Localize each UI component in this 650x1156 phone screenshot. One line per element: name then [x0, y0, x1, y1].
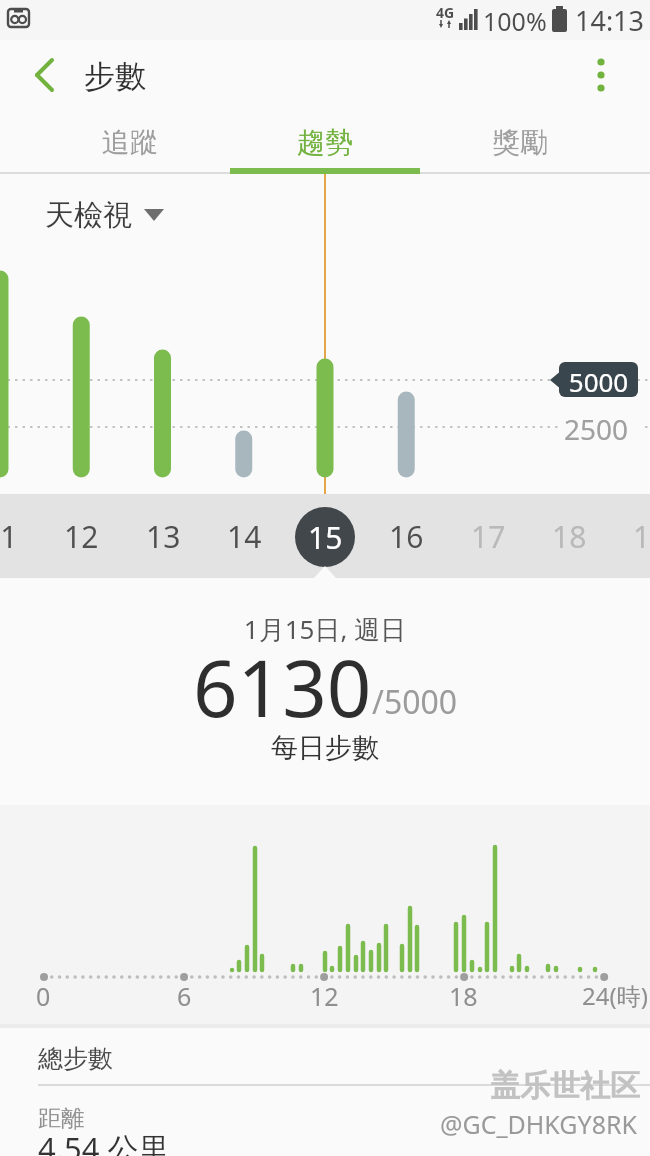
staticText: 18 — [449, 979, 478, 1013]
staticText: 14 — [227, 516, 262, 557]
staticText: 2500 — [564, 410, 629, 448]
staticText: 13 — [146, 516, 181, 557]
staticText: @GC_DHKGY8RK — [440, 1107, 638, 1141]
staticText: 24(時) — [582, 979, 648, 1012]
staticText: 6130 — [193, 634, 372, 740]
staticText: 19 — [633, 516, 650, 557]
button[interactable]: 11 — [0, 494, 40, 578]
button[interactable]: 15 — [295, 507, 355, 567]
staticText: 14:13 — [575, 2, 645, 39]
staticText: 總步數 — [38, 1043, 113, 1074]
button[interactable]: 18 — [529, 494, 609, 578]
button[interactable]: 追蹤 — [35, 110, 225, 174]
staticText: 17 — [471, 516, 506, 557]
staticText: 4.54 公里 — [38, 1127, 170, 1156]
staticText: /5000 — [372, 680, 458, 724]
staticText: 1月15日, 週日 — [0, 611, 650, 647]
button[interactable]: 17 — [448, 494, 528, 578]
staticText: 獎勵 — [492, 125, 548, 160]
button[interactable]: 12 — [41, 494, 121, 578]
staticText: 0 — [36, 979, 51, 1013]
staticText: 盖乐世社区 — [490, 1067, 640, 1105]
button[interactable]: 趨勢 — [230, 110, 420, 174]
button[interactable]: 16 — [366, 494, 446, 578]
staticText: 12 — [310, 979, 339, 1013]
staticText: 16 — [389, 516, 424, 557]
staticText: 6 — [177, 979, 192, 1013]
button[interactable]: 14 — [204, 494, 284, 578]
staticText: 18 — [552, 516, 587, 557]
staticText: 天檢視 — [45, 197, 132, 234]
staticText: 5000 — [559, 364, 638, 398]
staticText: 每日步數 — [0, 731, 650, 765]
staticText: 11 — [0, 516, 18, 557]
staticText: 追蹤 — [102, 125, 158, 160]
staticText: 100% — [483, 4, 547, 38]
staticText: 距離 — [38, 1104, 84, 1133]
staticText: 4G — [436, 3, 455, 22]
button[interactable]: 天檢視 — [30, 192, 174, 238]
button[interactable]: 19 — [610, 494, 650, 578]
button[interactable] — [20, 50, 70, 100]
staticText: 趨勢 — [297, 125, 353, 160]
staticText: 12 — [64, 516, 99, 557]
button[interactable]: 13 — [123, 494, 203, 578]
staticText: 15 — [308, 517, 343, 558]
staticText: 步數 — [84, 57, 146, 96]
button[interactable] — [576, 50, 626, 100]
button[interactable]: 獎勵 — [425, 110, 615, 174]
button[interactable]: 總步數 — [0, 1032, 650, 1084]
